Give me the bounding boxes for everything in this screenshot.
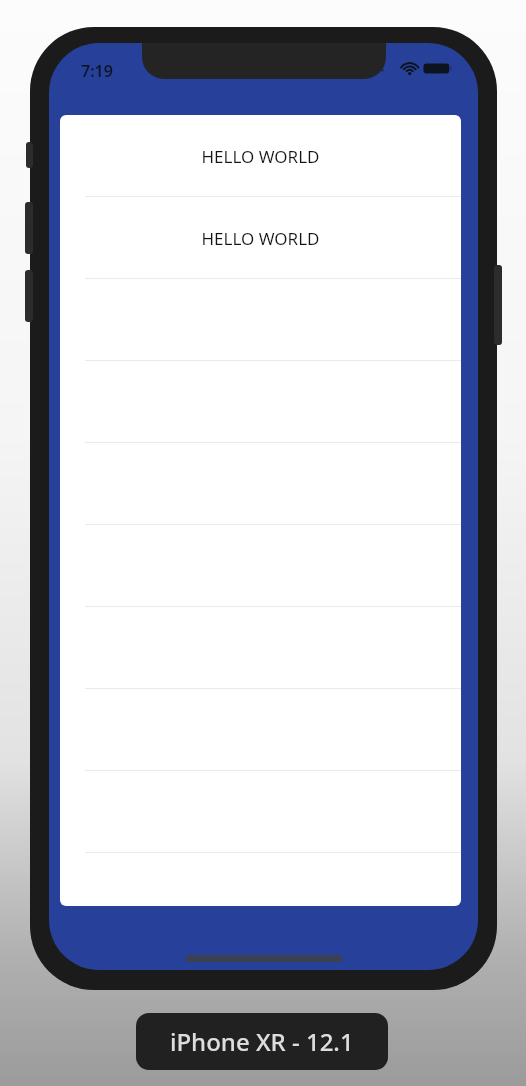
button[interactable]: Empty list row [60, 853, 461, 906]
other: Wi-Fi and battery status [365, 60, 451, 77]
button[interactable]: iPhone XR - 12.1 [136, 1013, 388, 1070]
button[interactable]: HELLO WORLD [60, 197, 461, 279]
staticText: iPhone XR - 12.1 [170, 1025, 354, 1058]
staticText: HELLO WORLD [72, 145, 449, 168]
button[interactable]: HELLO WORLD [60, 115, 461, 197]
staticText: HELLO WORLD [72, 227, 449, 250]
staticText: 7:19 [81, 60, 113, 82]
